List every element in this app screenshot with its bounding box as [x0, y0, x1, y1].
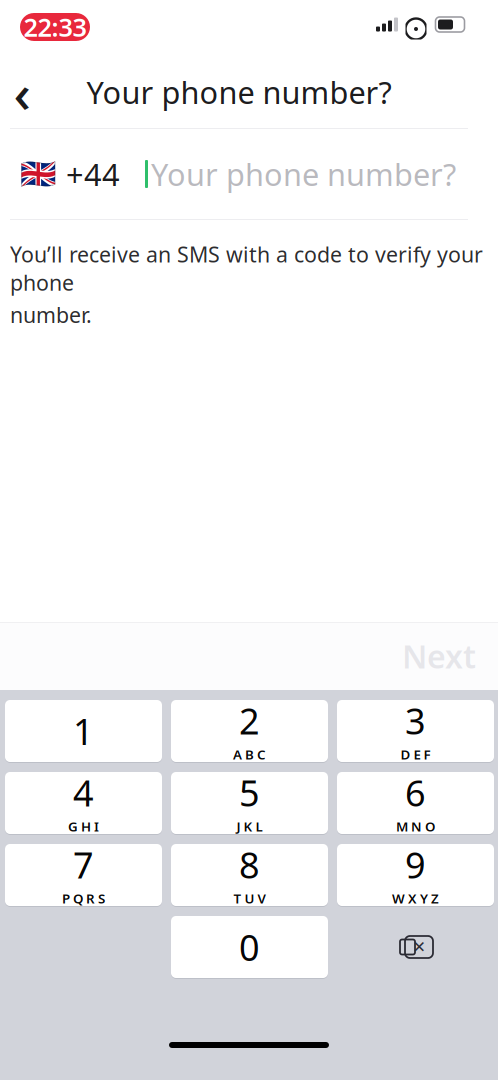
button[interactable]: 🇬🇧 [0, 129, 488, 219]
staticText: Your phone number? [86, 72, 391, 112]
staticText: 2 [239, 697, 260, 744]
button[interactable]: 3 [337, 700, 494, 762]
staticText: T U V [233, 890, 265, 907]
staticText: G H I [68, 818, 99, 835]
staticText: 7 [73, 841, 94, 888]
button[interactable]: 9 [337, 844, 494, 906]
staticText: M N O [396, 818, 435, 835]
staticText: W X Y Z [392, 890, 439, 907]
staticText: J K L [236, 818, 262, 835]
staticText: Next [402, 635, 476, 677]
staticText: 22:33 [23, 10, 86, 44]
button[interactable]: 4 [5, 772, 162, 834]
staticText: 6 [405, 769, 426, 816]
button[interactable]: Back [0, 62, 48, 122]
button[interactable]: 7 [5, 844, 162, 906]
staticText: 4 [73, 769, 94, 816]
staticText: You’ll receive an SMS with a code to ver… [10, 240, 483, 297]
button[interactable]: 5 [171, 772, 328, 834]
staticText: number. [10, 301, 92, 329]
staticText: 9 [405, 841, 426, 888]
staticText: ✕ [412, 938, 425, 956]
button[interactable]: Next [402, 623, 498, 689]
button[interactable]: 8 [171, 844, 328, 906]
button[interactable]: 2 [171, 700, 328, 762]
staticText: 5 [239, 769, 260, 816]
staticText: 8 [239, 841, 260, 888]
staticText: 0 [239, 923, 260, 971]
button[interactable]: 1 [5, 700, 162, 762]
staticText: ‹ [13, 57, 30, 127]
staticText: 1 [73, 707, 94, 755]
staticText: P Q R S [62, 890, 105, 907]
button[interactable]: 6 [337, 772, 494, 834]
staticText: 3 [405, 697, 426, 744]
staticText: +44 [66, 154, 120, 194]
staticText: Your phone number? [151, 154, 456, 194]
staticText: D E F [400, 746, 430, 763]
staticText: A B C [233, 746, 266, 763]
button[interactable]: 0 [171, 916, 328, 978]
button[interactable]: Delete [337, 916, 494, 978]
staticText: 🇬🇧 [20, 157, 57, 191]
